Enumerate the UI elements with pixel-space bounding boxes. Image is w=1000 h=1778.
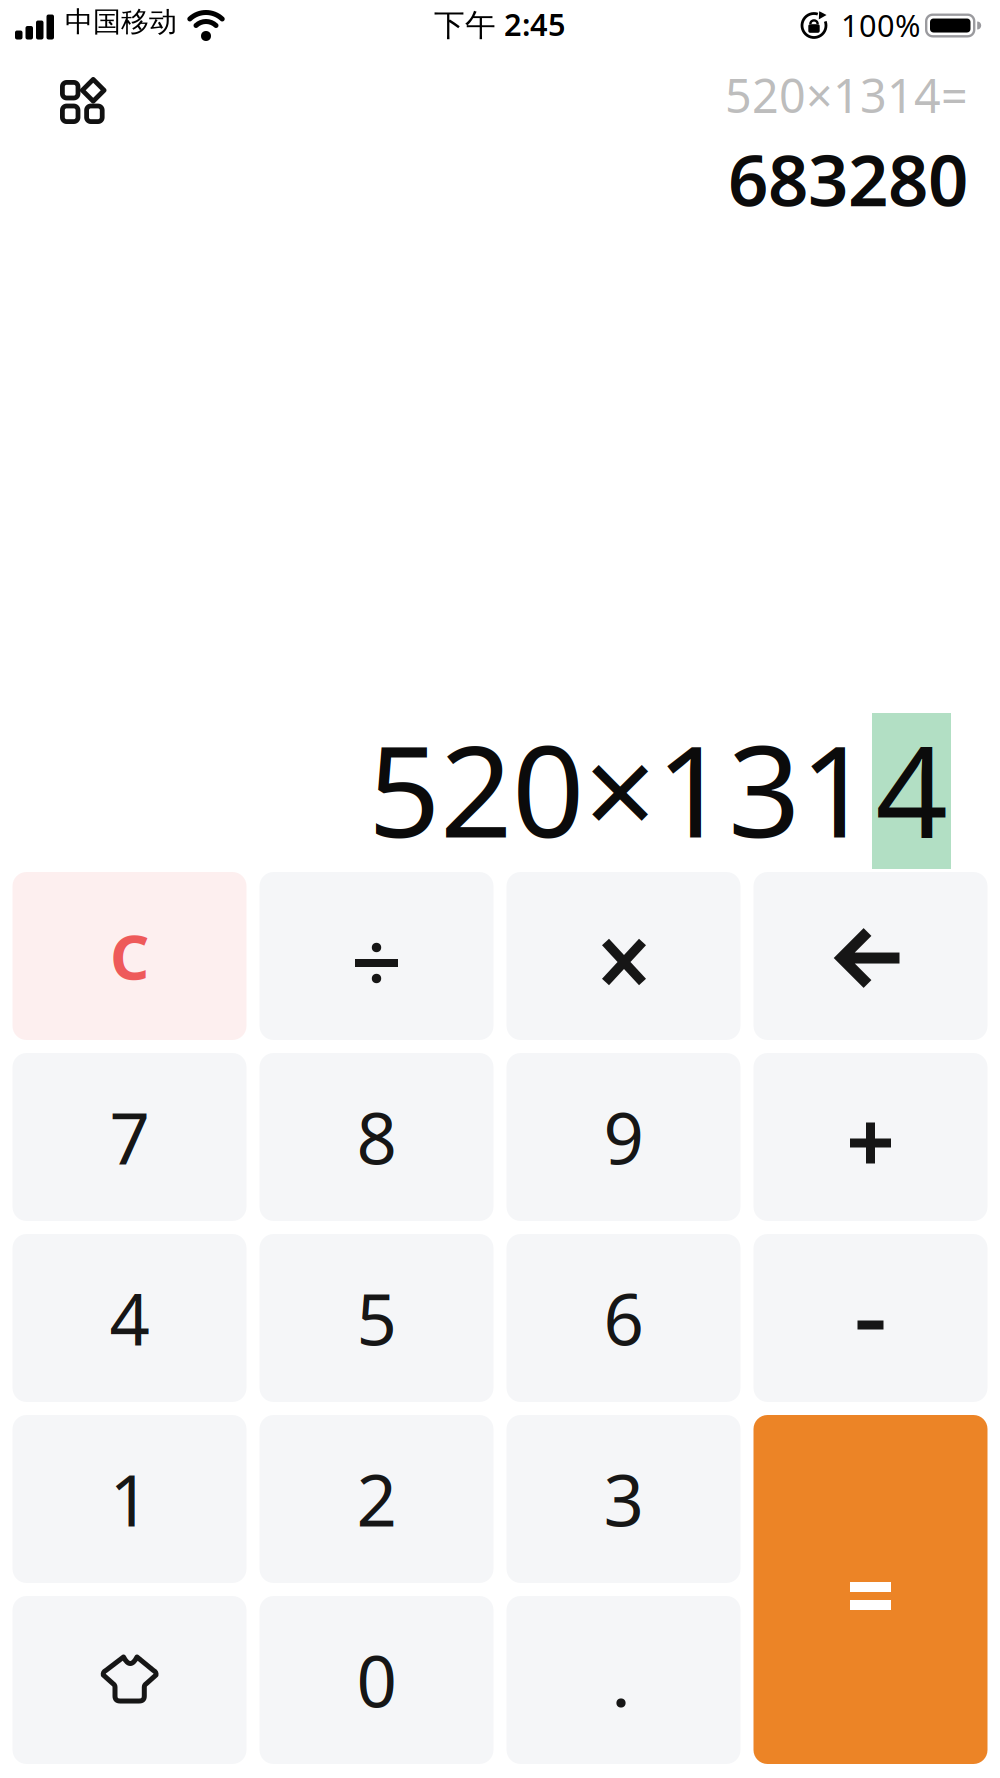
staticText: 3: [603, 1452, 643, 1546]
button[interactable]: Plus: [753, 1053, 987, 1221]
button[interactable]: Decimal point: [506, 1596, 740, 1764]
button[interactable]: 9: [506, 1053, 740, 1221]
staticText: 4: [109, 1271, 149, 1365]
button[interactable]: 4: [12, 1234, 246, 1402]
staticText: 7: [109, 1090, 149, 1184]
button[interactable]: 0: [259, 1596, 493, 1764]
button[interactable]: 5: [259, 1234, 493, 1402]
button[interactable]: 2: [259, 1415, 493, 1583]
staticText: 520×1314=: [725, 64, 968, 126]
staticText: 0: [356, 1633, 396, 1727]
button[interactable]: Divide: [259, 872, 493, 1040]
button[interactable]: Clear: [12, 872, 246, 1040]
staticText: 下午 2:45: [434, 4, 566, 44]
button[interactable]: 8: [259, 1053, 493, 1221]
button[interactable]: 3: [506, 1415, 740, 1583]
staticText: 2: [356, 1452, 396, 1546]
staticText: 100%: [841, 5, 920, 45]
staticText: 520×131: [368, 704, 872, 872]
button[interactable]: Apps: [60, 78, 106, 124]
staticText: 6: [603, 1271, 643, 1365]
staticText: 1: [109, 1452, 149, 1546]
button[interactable]: Equals: [753, 1415, 987, 1764]
staticText: 4: [875, 704, 947, 872]
button[interactable]: Backspace: [753, 872, 987, 1040]
button[interactable]: Theme: [12, 1596, 246, 1764]
staticText: 683280: [728, 132, 968, 226]
button[interactable]: Multiply: [506, 872, 740, 1040]
staticText: 中国移动: [65, 5, 177, 39]
button[interactable]: 7: [12, 1053, 246, 1221]
button[interactable]: 1: [12, 1415, 246, 1583]
staticText: C: [110, 915, 149, 997]
staticText: 9: [603, 1090, 643, 1184]
button[interactable]: 6: [506, 1234, 740, 1402]
staticText: 5: [356, 1271, 396, 1365]
staticText: 8: [356, 1090, 396, 1184]
button[interactable]: Minus: [753, 1234, 987, 1402]
